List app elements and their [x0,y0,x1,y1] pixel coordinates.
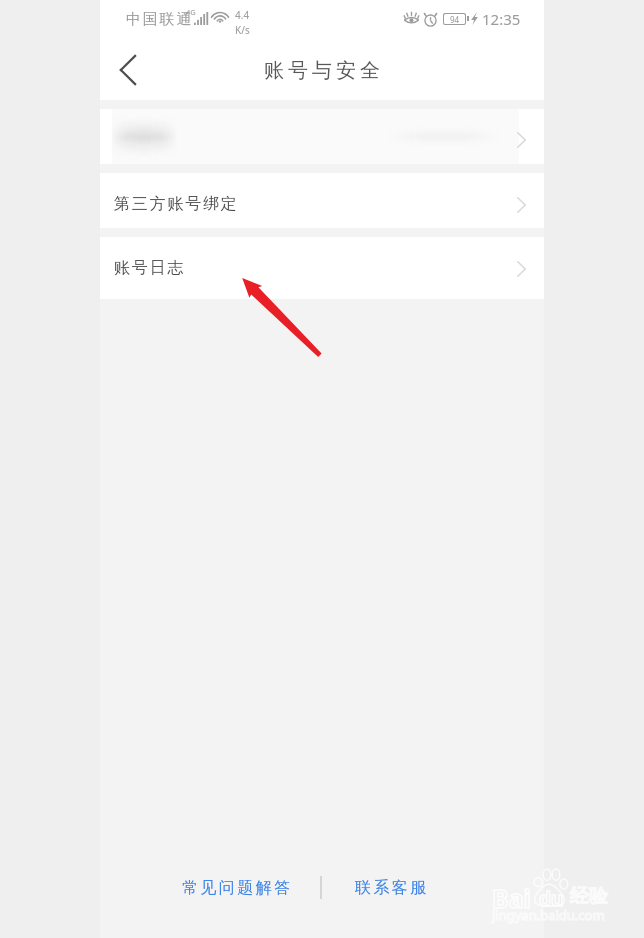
staticText: 94 [450,14,460,24]
staticText: 经验 [570,884,608,908]
staticText: jingyan.baidu.com [492,906,605,924]
staticText: Bai [492,881,532,915]
staticText: 12:35 [482,9,521,29]
staticText: du [539,886,564,912]
staticText: 账号与安全 [262,58,382,83]
button[interactable]: 联系客服 [347,870,437,906]
staticText: 4.4 [235,8,250,22]
button[interactable]: 第三方账号绑定 [100,173,544,228]
staticText: 第三方账号绑定 [114,194,239,214]
staticText: 账号日志 [114,258,186,278]
staticText: K/s [235,23,250,37]
button[interactable]: Back [100,45,156,95]
button[interactable]: 常见问题解答 [174,870,301,906]
staticText: 中国联通 [126,10,194,29]
button[interactable]: 账号日志 [100,237,544,299]
staticText: 4G [186,7,196,17]
button[interactable] [100,109,544,164]
